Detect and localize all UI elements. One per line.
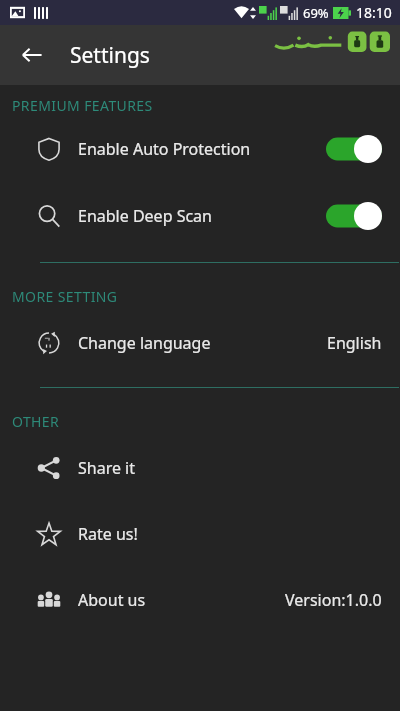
staticText: English <box>327 332 382 354</box>
staticText: 18:10 <box>356 3 392 22</box>
button[interactable]: Enable Auto Protection <box>0 125 400 173</box>
button[interactable]: Toggle on <box>326 135 382 163</box>
staticText: Share it <box>78 457 136 479</box>
button[interactable]: Enable Deep Scan <box>0 192 400 240</box>
staticText: Settings <box>70 41 150 70</box>
button[interactable]: Farsroid logo <box>298 29 390 55</box>
staticText: Rate us! <box>78 523 138 545</box>
staticText: Version:1.0.0 <box>285 589 382 611</box>
button[interactable]: Back <box>10 33 54 77</box>
staticText: Change language <box>78 332 211 354</box>
staticText: About us <box>78 589 146 611</box>
button[interactable]: Change language <box>0 320 400 366</box>
staticText: 69% <box>303 4 329 22</box>
button[interactable]: Share it <box>0 445 400 491</box>
staticText: Enable Deep Scan <box>78 205 212 227</box>
staticText: PREMIUM FEATURES <box>12 96 153 115</box>
button[interactable]: About us <box>0 577 400 623</box>
staticText: OTHER <box>12 412 60 431</box>
staticText: Enable Auto Protection <box>78 138 251 160</box>
button[interactable]: Rate us! <box>0 511 400 557</box>
button[interactable]: Toggle on <box>326 202 382 230</box>
staticText: MORE SETTING <box>12 287 118 306</box>
